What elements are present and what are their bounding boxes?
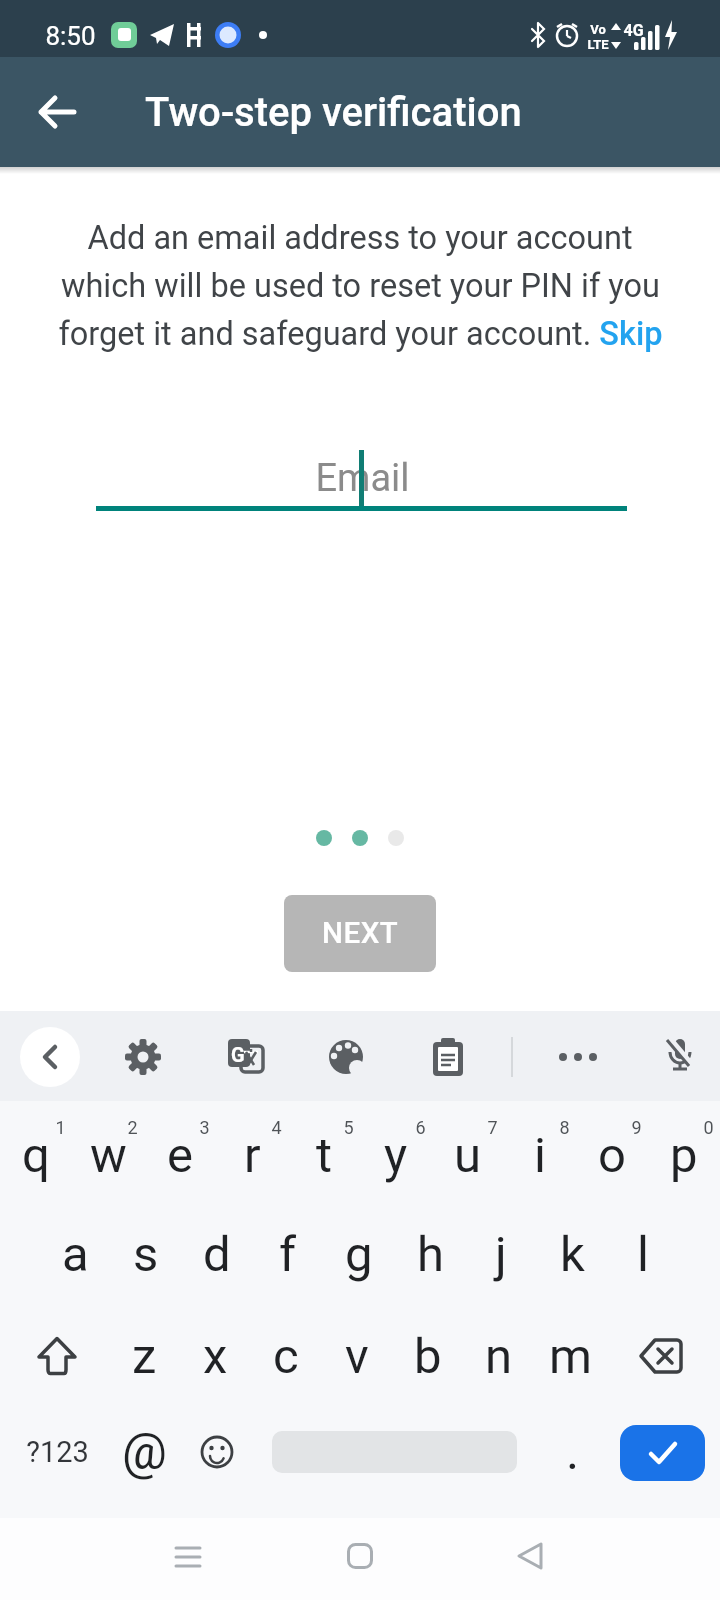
staticText: i [534,1127,546,1184]
staticText: d [203,1226,231,1283]
staticText: x [203,1328,228,1385]
button[interactable]: j [466,1206,536,1302]
button[interactable] [115,1029,171,1085]
button[interactable] [652,1029,708,1085]
staticText: o [598,1127,626,1184]
staticText: 2 [127,1117,138,1138]
staticText: 6 [415,1117,426,1138]
staticText: h [417,1226,444,1283]
button[interactable] [20,1027,80,1087]
button[interactable] [550,1029,606,1085]
staticText: s [133,1226,159,1283]
button[interactable] [17,1308,97,1404]
button[interactable]: z [109,1308,179,1404]
button[interactable] [592,312,662,356]
button[interactable] [420,1029,476,1085]
button[interactable]: @ [109,1404,179,1500]
staticText: u [454,1127,482,1184]
staticText: 8:50 [45,21,96,51]
staticText: n [485,1328,513,1385]
button[interactable] [320,1521,400,1591]
button[interactable]: p [649,1107,719,1203]
button[interactable] [148,1522,228,1592]
staticText: G [231,1043,245,1066]
staticText: g [345,1226,373,1283]
staticText: w [90,1127,127,1184]
button[interactable] [25,80,89,144]
staticText: m [549,1328,592,1385]
staticText: b [414,1328,442,1385]
button[interactable]: o [577,1107,647,1203]
button[interactable]: ?123 [12,1404,102,1500]
staticText: 0 [703,1117,714,1138]
staticText: 8 [559,1117,570,1138]
button[interactable] [490,1521,570,1591]
staticText: 3 [199,1117,210,1138]
staticText: 1 [55,1117,66,1138]
button[interactable]: r [217,1107,287,1203]
button[interactable]: b [393,1308,463,1404]
button[interactable]: c [251,1308,321,1404]
staticText: 4 [271,1117,282,1138]
button[interactable]: i [505,1107,575,1203]
button[interactable]: t [289,1107,359,1203]
staticText: f [279,1226,297,1283]
button[interactable]: w [73,1107,143,1203]
staticText: ?123 [26,1435,89,1469]
staticText: c [273,1328,299,1385]
button[interactable]: g [324,1206,394,1302]
button[interactable]: k [537,1206,607,1302]
staticText: a [62,1226,89,1283]
staticText: 9 [631,1117,642,1138]
button[interactable]: a [40,1206,110,1302]
button[interactable]: f [253,1206,323,1302]
staticText: 7 [487,1117,498,1138]
button[interactable]: e [145,1107,215,1203]
staticText: Two-step verification [145,89,522,136]
button[interactable] [621,1308,701,1404]
staticText: q [22,1127,50,1184]
button[interactable]: q [1,1107,71,1203]
staticText: forget it and safeguard your account. Sk… [58,315,663,353]
staticText: r [244,1127,261,1184]
staticText: @ [122,1423,167,1482]
button[interactable]: NEXT [284,895,436,972]
staticText: z [132,1328,157,1385]
staticText: Email [315,456,410,501]
button[interactable]: u [433,1107,503,1203]
staticText: p [670,1127,698,1184]
button[interactable] [318,1029,374,1085]
staticText: which will be used to reset your PIN if … [61,267,660,305]
button[interactable]: n [464,1308,534,1404]
staticText: LTE [587,37,609,52]
staticText: 4G [623,21,644,40]
staticText: Add an email address to your account [87,219,633,257]
staticText: . [566,1423,580,1482]
button[interactable] [95,435,625,525]
button[interactable]: v [322,1308,392,1404]
staticText: j [495,1226,507,1283]
staticText: t [316,1127,333,1184]
staticText: NEXT [322,916,399,951]
staticText: v [345,1328,369,1385]
button[interactable]: l [608,1206,678,1302]
button[interactable]: s [111,1206,181,1302]
button[interactable]: h [395,1206,465,1302]
button[interactable] [620,1425,705,1481]
staticText: l [637,1226,649,1283]
button[interactable]: . [538,1404,608,1500]
staticText: 5 [343,1117,354,1138]
staticText: Vo [590,22,606,37]
button[interactable]: x [180,1308,250,1404]
button[interactable]: y [361,1107,431,1203]
button[interactable] [182,1404,252,1500]
staticText: y [384,1127,408,1184]
staticText: e [167,1127,193,1184]
staticText: k [560,1226,585,1283]
button[interactable]: m [535,1308,605,1404]
button[interactable]: d [182,1206,252,1302]
button[interactable]: G [218,1029,274,1085]
